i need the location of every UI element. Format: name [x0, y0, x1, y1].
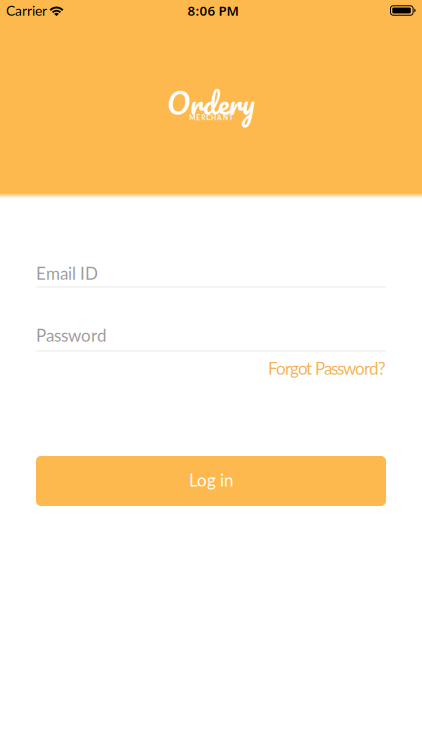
button[interactable]: Log in: [36, 456, 386, 506]
staticText: A: [217, 114, 222, 122]
button[interactable]: Forgot: [268, 358, 386, 378]
staticText: Log in: [189, 470, 233, 490]
staticText: Email ID: [36, 263, 98, 283]
staticText: E: [196, 114, 200, 122]
staticText: N: [223, 114, 228, 122]
staticText: R: [201, 114, 205, 122]
staticText: Password: [36, 325, 107, 345]
staticText: Password?: [315, 358, 386, 378]
staticText: 8:06 PM: [187, 2, 238, 19]
staticText: M: [189, 114, 195, 122]
staticText: T: [229, 114, 233, 122]
staticText: C: [206, 114, 210, 122]
staticText: Ordery: [167, 78, 255, 128]
button[interactable]: Password: [36, 325, 386, 351]
staticText: Carrier: [6, 2, 47, 19]
staticText: Forgot: [268, 358, 312, 378]
staticText: H: [211, 114, 216, 122]
button[interactable]: Email ID: [36, 263, 386, 287]
